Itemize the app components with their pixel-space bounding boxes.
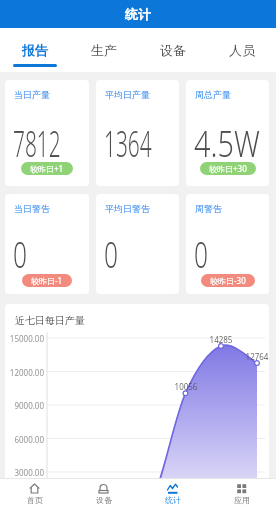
button[interactable]: 报告 — [0, 28, 69, 72]
button[interactable]: 周总产量 — [186, 80, 269, 186]
staticText: 周警告 — [195, 203, 222, 214]
staticText: 生产 — [91, 42, 117, 58]
staticText: 15000.00 — [5, 333, 44, 344]
staticText: 0 — [13, 230, 27, 279]
staticText: 设备 — [160, 42, 186, 58]
staticText: 14285 — [201, 334, 241, 345]
button[interactable]: 设备 — [69, 479, 138, 509]
staticText: 较昨日-1 — [31, 275, 63, 286]
staticText: 报告 — [22, 42, 48, 58]
staticText: 首页 — [27, 495, 43, 505]
button[interactable]: 周警告 — [186, 194, 269, 294]
staticText: 10056 — [166, 381, 206, 392]
staticText: 人员 — [229, 42, 255, 58]
staticText: 较昨日+30 — [209, 163, 247, 174]
staticText: 6000.00 — [5, 434, 44, 445]
staticText: 较昨日-30 — [210, 275, 246, 286]
staticText: 应用 — [234, 495, 250, 505]
staticText: 12764 — [237, 351, 269, 362]
staticText: 0 — [194, 230, 208, 279]
staticText: 1364 — [104, 119, 152, 168]
staticText: 统计 — [125, 6, 151, 22]
staticText: 0 — [104, 230, 118, 279]
button[interactable]: 设备 — [138, 28, 207, 72]
staticText: 周总产量 — [195, 89, 231, 100]
staticText: 平均日产量 — [105, 89, 150, 100]
button[interactable]: 当日产量 — [5, 80, 89, 186]
button[interactable]: 首页 — [0, 479, 69, 509]
staticText: 近七日每日产量 — [15, 314, 85, 327]
staticText: 当日警告 — [14, 203, 50, 214]
staticText: 3000.00 — [5, 467, 44, 478]
staticText: 9000.00 — [5, 400, 44, 411]
staticText: 4.5W — [194, 119, 260, 168]
staticText: 统计 — [165, 495, 181, 505]
staticText: 设备 — [96, 495, 112, 505]
button[interactable]: 平均日警告 — [96, 194, 179, 294]
button[interactable]: 应用 — [207, 479, 276, 509]
staticText: 较昨日+1 — [30, 163, 64, 174]
button[interactable]: 生产 — [69, 28, 138, 72]
button[interactable]: 统计 — [138, 479, 207, 509]
button[interactable]: 平均日产量 — [96, 80, 179, 186]
staticText: 平均日警告 — [105, 203, 150, 214]
staticText: 7812 — [13, 119, 61, 168]
button[interactable]: 当日警告 — [5, 194, 89, 294]
staticText: 12000.00 — [5, 367, 44, 378]
button[interactable]: 人员 — [207, 28, 276, 72]
staticText: 当日产量 — [14, 89, 50, 100]
